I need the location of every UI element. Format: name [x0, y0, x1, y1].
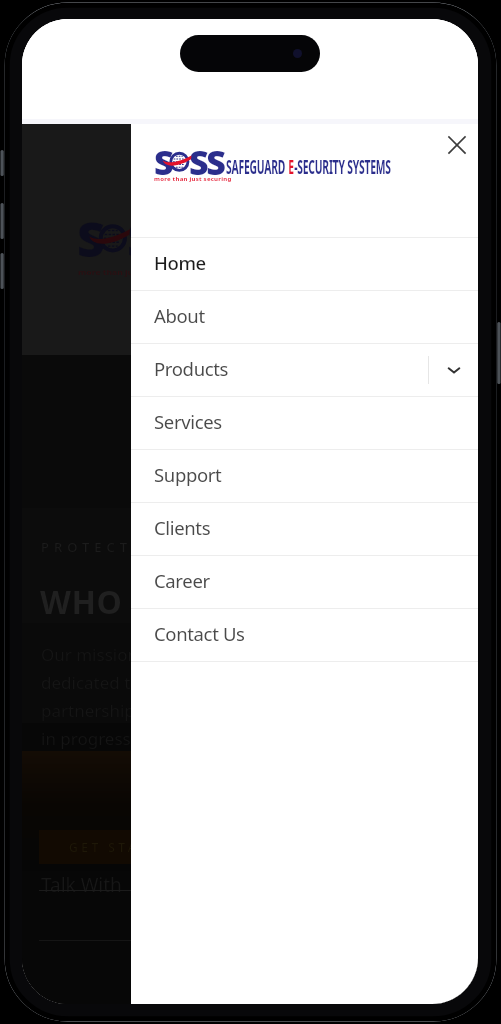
staticText: -SECURITY SYSTEMS: [294, 153, 391, 180]
staticText: Our mission dedicated t partnership in p…: [41, 643, 138, 750]
staticText: Services: [154, 409, 222, 434]
staticText: Talk With: [41, 872, 122, 898]
staticText: SAFEGUARD: [226, 153, 288, 180]
staticText: Contact Us: [154, 621, 245, 646]
staticText: PROTECTING: [41, 538, 172, 556]
staticText: S: [154, 139, 174, 183]
staticText: Clients: [154, 515, 211, 540]
staticText: more than just securing: [78, 267, 181, 277]
button[interactable]: Clients: [131, 503, 478, 555]
staticText: WHO WE: [40, 580, 181, 624]
staticText: About: [154, 303, 205, 328]
button[interactable]: About: [131, 291, 478, 343]
staticText: GET STA: [69, 839, 140, 855]
button[interactable]: GET STA: [39, 830, 478, 864]
button[interactable]: Services: [131, 397, 478, 449]
staticText: Products: [154, 356, 229, 381]
staticText: Support: [154, 462, 222, 487]
staticText: SS: [127, 206, 184, 268]
staticText: S: [77, 206, 105, 268]
button[interactable]: Support: [131, 450, 478, 502]
staticText: Career: [154, 568, 210, 593]
button[interactable]: Products: [131, 344, 478, 396]
button[interactable]: Contact Us: [131, 609, 478, 661]
staticText: SS: [189, 139, 229, 183]
button[interactable]: Career: [131, 556, 478, 608]
staticText: more than just securing: [154, 175, 232, 183]
staticText: Home: [154, 250, 206, 275]
button[interactable]: Home: [131, 238, 478, 290]
button[interactable]: Close menu: [437, 125, 477, 165]
staticText: E: [288, 153, 294, 180]
